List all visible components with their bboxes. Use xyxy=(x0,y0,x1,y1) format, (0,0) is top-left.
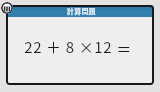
staticText: 計算問題 xyxy=(67,6,96,16)
staticText: 22 ＋ 8 ×12 ＝ xyxy=(24,36,132,60)
button[interactable]: App icon xyxy=(1,2,13,14)
button[interactable]: 計算問題 xyxy=(6,5,154,17)
